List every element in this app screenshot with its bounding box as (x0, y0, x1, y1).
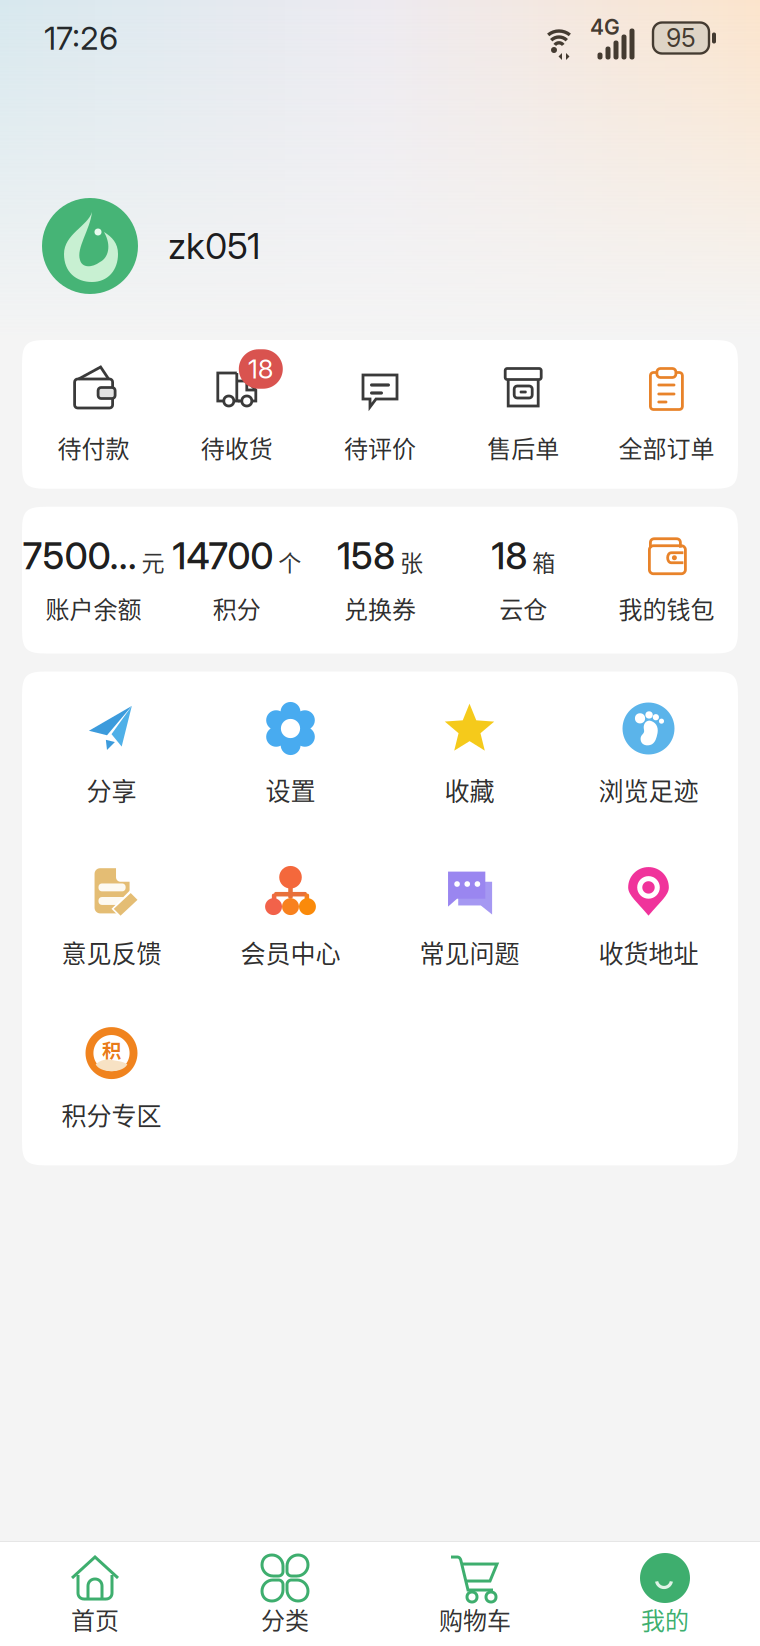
staticText: 设置 (265, 771, 315, 808)
staticText: 全部订单 (618, 430, 714, 465)
staticText: 我的 (641, 1602, 689, 1636)
button[interactable]: 我的 (570, 1552, 760, 1634)
button[interactable]: 常见问题 (380, 864, 559, 970)
staticText: 张 (400, 545, 423, 578)
staticText: 待评价 (344, 430, 416, 465)
staticText: 待收货 (201, 430, 273, 465)
button[interactable]: 待评价 (308, 364, 452, 465)
staticText: 首页 (71, 1602, 119, 1636)
staticText: 收货地址 (598, 934, 698, 970)
staticText: 收藏 (444, 771, 494, 808)
button[interactable]: 分类 (190, 1552, 380, 1634)
button[interactable]: 会员中心 (201, 864, 380, 970)
button[interactable]: 意见反馈 (22, 864, 201, 970)
staticText: 18 (491, 533, 527, 578)
button[interactable]: 收货地址 (559, 864, 738, 970)
staticText: 云仓 (499, 591, 547, 626)
button[interactable]: 14700 (165, 535, 308, 626)
staticText: 分类 (261, 1602, 309, 1636)
staticText: 兑换券 (344, 591, 416, 626)
button[interactable]: Avatar (42, 198, 138, 294)
staticText: 待付款 (58, 430, 130, 465)
button[interactable]: 售后单 (452, 364, 595, 465)
button[interactable]: 我的钱包 (595, 535, 738, 626)
staticText: 购物车 (439, 1602, 511, 1636)
button[interactable]: 待付款 (22, 364, 165, 465)
staticText: 账户余额 (46, 591, 142, 626)
staticText: 17:26 (44, 19, 118, 57)
staticText: 14700 (172, 533, 273, 578)
staticText: 售后单 (487, 430, 559, 465)
button[interactable]: 18 (165, 364, 308, 465)
button[interactable]: 7500… (22, 535, 165, 626)
staticText: 积分专区 (61, 1096, 161, 1132)
button[interactable]: 分享 (22, 701, 201, 808)
staticText: 个 (278, 545, 301, 578)
button[interactable]: 18 (452, 535, 595, 626)
staticText: 分享 (86, 771, 136, 808)
staticText: 意见反馈 (61, 934, 161, 970)
staticText: 箱 (532, 545, 555, 578)
staticText: 7500… (23, 533, 137, 578)
staticText: 常见问题 (419, 934, 519, 970)
staticText: 积 (103, 1038, 120, 1062)
staticText: 95 (666, 23, 696, 53)
staticText: 4G (590, 14, 620, 40)
staticText: 浏览足迹 (598, 771, 698, 808)
button[interactable]: 设置 (201, 701, 380, 808)
staticText: 158 (337, 533, 395, 578)
staticText: 我的钱包 (618, 591, 714, 626)
staticText: 积分 (213, 591, 261, 626)
staticText: zk051 (168, 224, 260, 268)
button[interactable]: 积 (22, 1026, 201, 1132)
button[interactable]: 158 (308, 535, 452, 626)
staticText: 元 (142, 545, 165, 578)
staticText: 18 (248, 353, 274, 385)
button[interactable]: 首页 (0, 1552, 190, 1634)
button[interactable]: 购物车 (380, 1552, 570, 1634)
button[interactable]: 收藏 (380, 701, 559, 808)
staticText: 会员中心 (240, 934, 340, 970)
button[interactable]: 浏览足迹 (559, 701, 738, 808)
button[interactable]: 全部订单 (595, 364, 738, 465)
